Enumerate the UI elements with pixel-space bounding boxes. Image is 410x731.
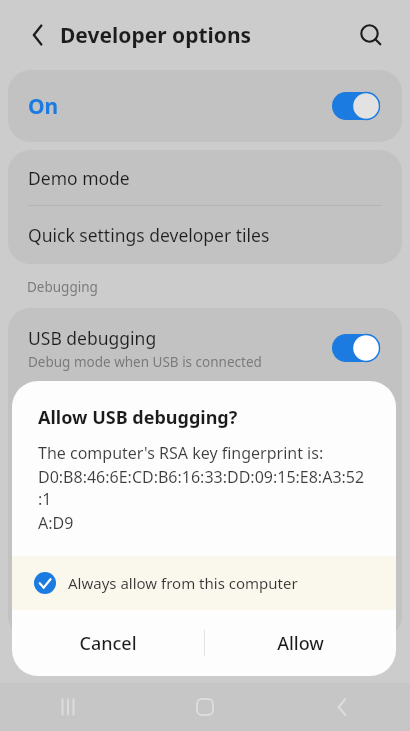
- staticText: D0:B8:46:6E:CD:B6:16:33:DD:09:15:E8:A3:5…: [38, 466, 368, 510]
- staticText: USB debugging: [28, 326, 157, 350]
- button[interactable]: USB debugging: [8, 308, 402, 388]
- button[interactable]: Toggle: [332, 92, 380, 120]
- button[interactable]: Always allow from this computer: [12, 556, 396, 610]
- staticText: The computer's RSA key fingerprint is:: [38, 442, 324, 464]
- staticText: Developer options: [60, 21, 252, 50]
- staticText: Debug mode when USB is connected: [28, 353, 262, 371]
- staticText: A:D9: [38, 512, 74, 534]
- button[interactable]: Search: [348, 12, 394, 58]
- staticText: Allow USB debugging?: [38, 405, 238, 430]
- button[interactable]: Demo mode: [8, 150, 402, 205]
- staticText: Quick settings developer tiles: [28, 223, 270, 247]
- staticText: Cancel: [79, 631, 137, 656]
- button[interactable]: Quick settings developer tiles: [8, 206, 402, 264]
- staticText: Always allow from this computer: [68, 573, 298, 593]
- staticText: Debugging: [27, 278, 98, 296]
- button[interactable]: Back: [14, 11, 62, 59]
- button[interactable]: Toggle: [332, 334, 380, 362]
- staticText: Allow: [277, 631, 324, 656]
- staticText: On: [28, 92, 59, 121]
- staticText: Demo mode: [28, 166, 130, 190]
- button[interactable]: Cancel: [12, 610, 204, 676]
- button[interactable]: Allow: [204, 610, 396, 676]
- button[interactable]: On: [8, 70, 402, 142]
- staticText: timeout: [28, 583, 93, 607]
